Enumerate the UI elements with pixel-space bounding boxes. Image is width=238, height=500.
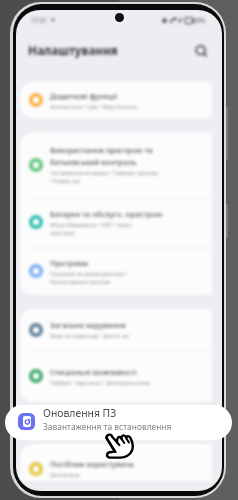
staticText: Спеціальні можливості <box>50 367 137 377</box>
button[interactable]: Використання пристрою та батьківський ко… <box>20 132 219 197</box>
staticText: TalkBack • Звук моно • Допоміжне меню <box>50 379 151 386</box>
button[interactable]: Оновлення ПЗ <box>20 409 219 440</box>
button[interactable]: Батарея та обслуго. пристрою <box>20 197 219 247</box>
staticText: Батарея та обслуго. пристрою <box>50 209 163 219</box>
staticText: Програми <box>50 258 89 268</box>
staticText: Android Auto • Labs • Baby Routines <box>50 103 138 110</box>
staticText: Посібник користувача <box>50 459 134 469</box>
staticText: Використання пристрою та батьківський ко… <box>50 145 153 167</box>
staticText: 20% <box>193 16 206 24</box>
staticText: Завантаження та встановлення <box>43 421 172 432</box>
button[interactable]: Спеціальні можливості <box>20 350 219 402</box>
button[interactable]: Посібник користувача <box>20 444 219 491</box>
staticText: Детальніше <box>50 471 80 478</box>
button[interactable]: Програми <box>20 247 219 295</box>
staticText: Оновлення ПЗ <box>50 415 105 425</box>
staticText: Мова та клавіатура • Дата й час <box>50 332 130 339</box>
button[interactable]: Налаштування <box>28 43 118 59</box>
staticText: 17:31 <box>31 16 47 24</box>
button[interactable]: Додаткові функції <box>20 82 219 118</box>
staticText: Час ввімкнення екрана • Таймери програм … <box>50 169 159 184</box>
button[interactable]: Оновлення ПЗ <box>5 405 232 440</box>
staticText: Загальне керування <box>50 320 126 330</box>
staticText: Завантаження та встановлення <box>50 427 130 434</box>
staticText: Місце збереження • ОЗП • Захист пристрою <box>50 221 134 236</box>
button[interactable]: Search <box>193 43 210 60</box>
button[interactable]: Загальне керування <box>20 309 219 350</box>
staticText: Програми за замовчуванням • Налаштування… <box>50 270 128 285</box>
staticText: Оновлення ПЗ <box>43 406 117 420</box>
other: Tap <box>105 433 134 458</box>
staticText: Додаткові функції <box>50 91 118 101</box>
